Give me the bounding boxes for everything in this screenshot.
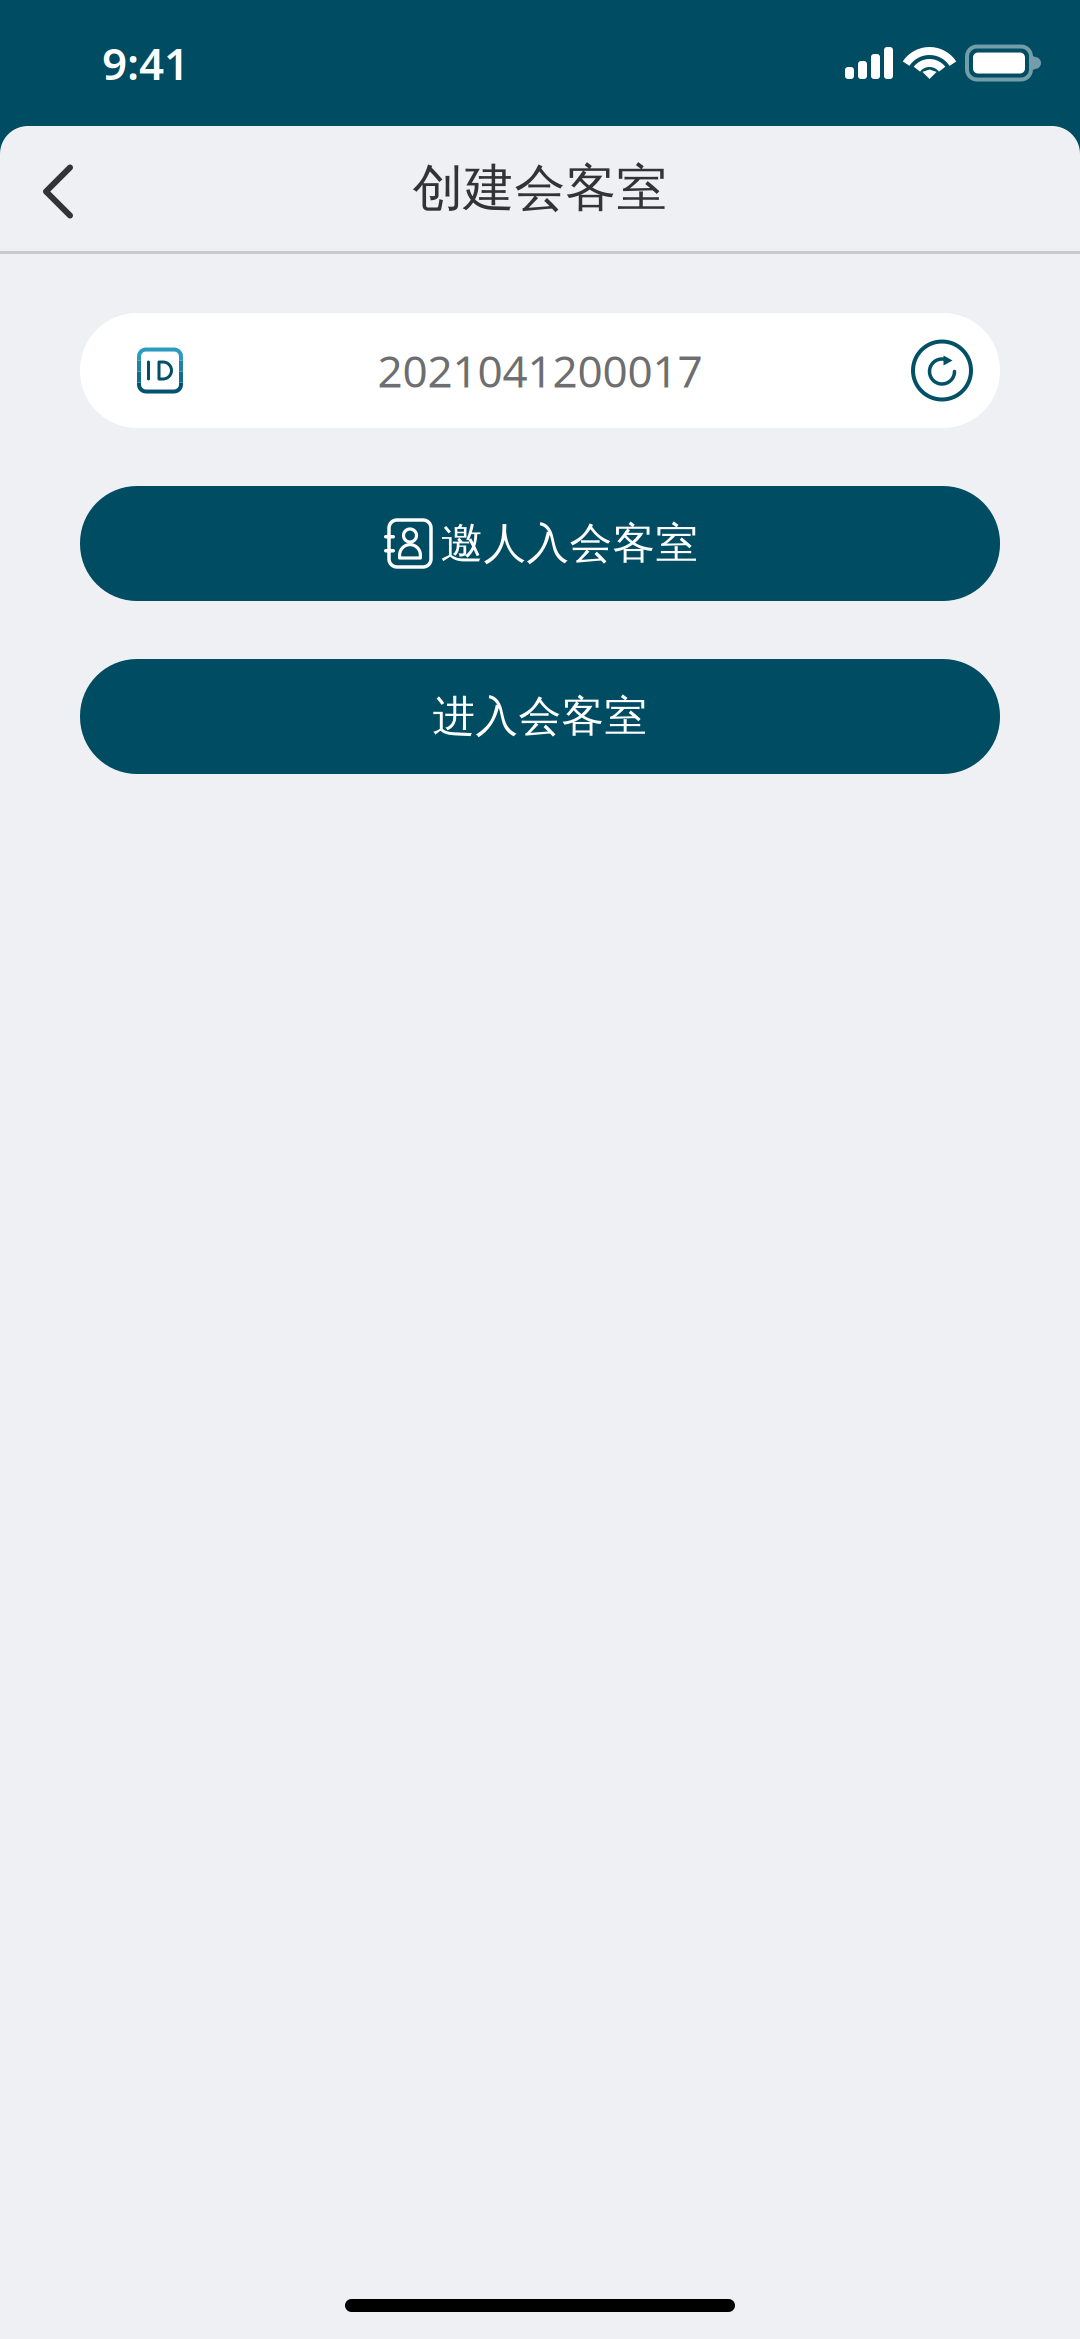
staticText: 邀人入会客室: [440, 517, 698, 570]
staticText: 2021041200017: [377, 341, 702, 400]
button[interactable]: 进入会客室: [80, 659, 1000, 774]
staticText: 9:41: [102, 34, 189, 92]
staticText: 创建会客室: [412, 157, 667, 220]
button[interactable]: Back: [3, 133, 113, 243]
button[interactable]: Refresh ID: [900, 328, 984, 412]
staticText: 进入会客室: [432, 690, 647, 743]
button[interactable]: 邀人入会客室: [80, 486, 1000, 601]
